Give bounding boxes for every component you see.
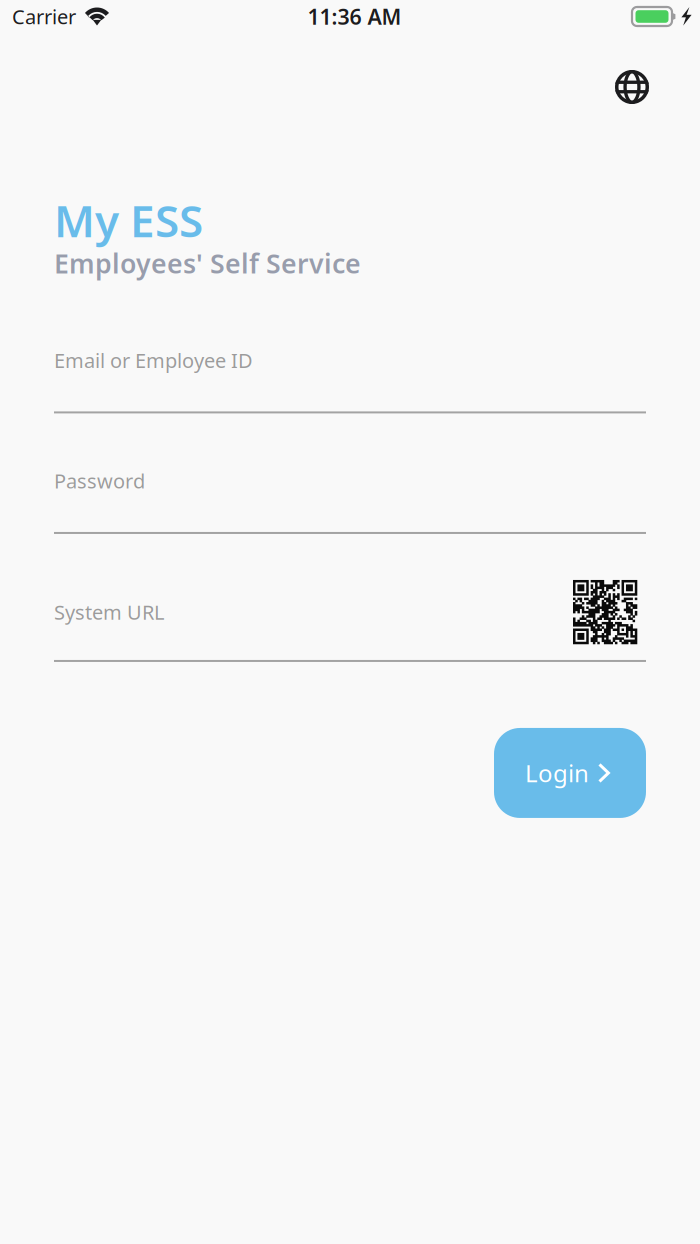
button[interactable]: Login <box>494 728 646 818</box>
button[interactable]: System URL <box>54 580 573 644</box>
staticText: Password <box>54 467 145 494</box>
staticText: 11:36 AM <box>307 2 401 31</box>
button[interactable]: Password <box>54 467 646 534</box>
button[interactable]: Scan QR code <box>573 580 646 644</box>
staticText: Employees' Self Service <box>54 245 361 281</box>
staticText: Email or Employee ID <box>54 347 253 373</box>
staticText: Carrier <box>12 3 76 30</box>
staticText: Login <box>525 757 589 789</box>
button[interactable]: Language <box>602 57 662 117</box>
button[interactable]: Email or Employee ID <box>54 347 646 413</box>
staticText: My ESS <box>54 191 203 249</box>
staticText: System URL <box>54 599 164 625</box>
